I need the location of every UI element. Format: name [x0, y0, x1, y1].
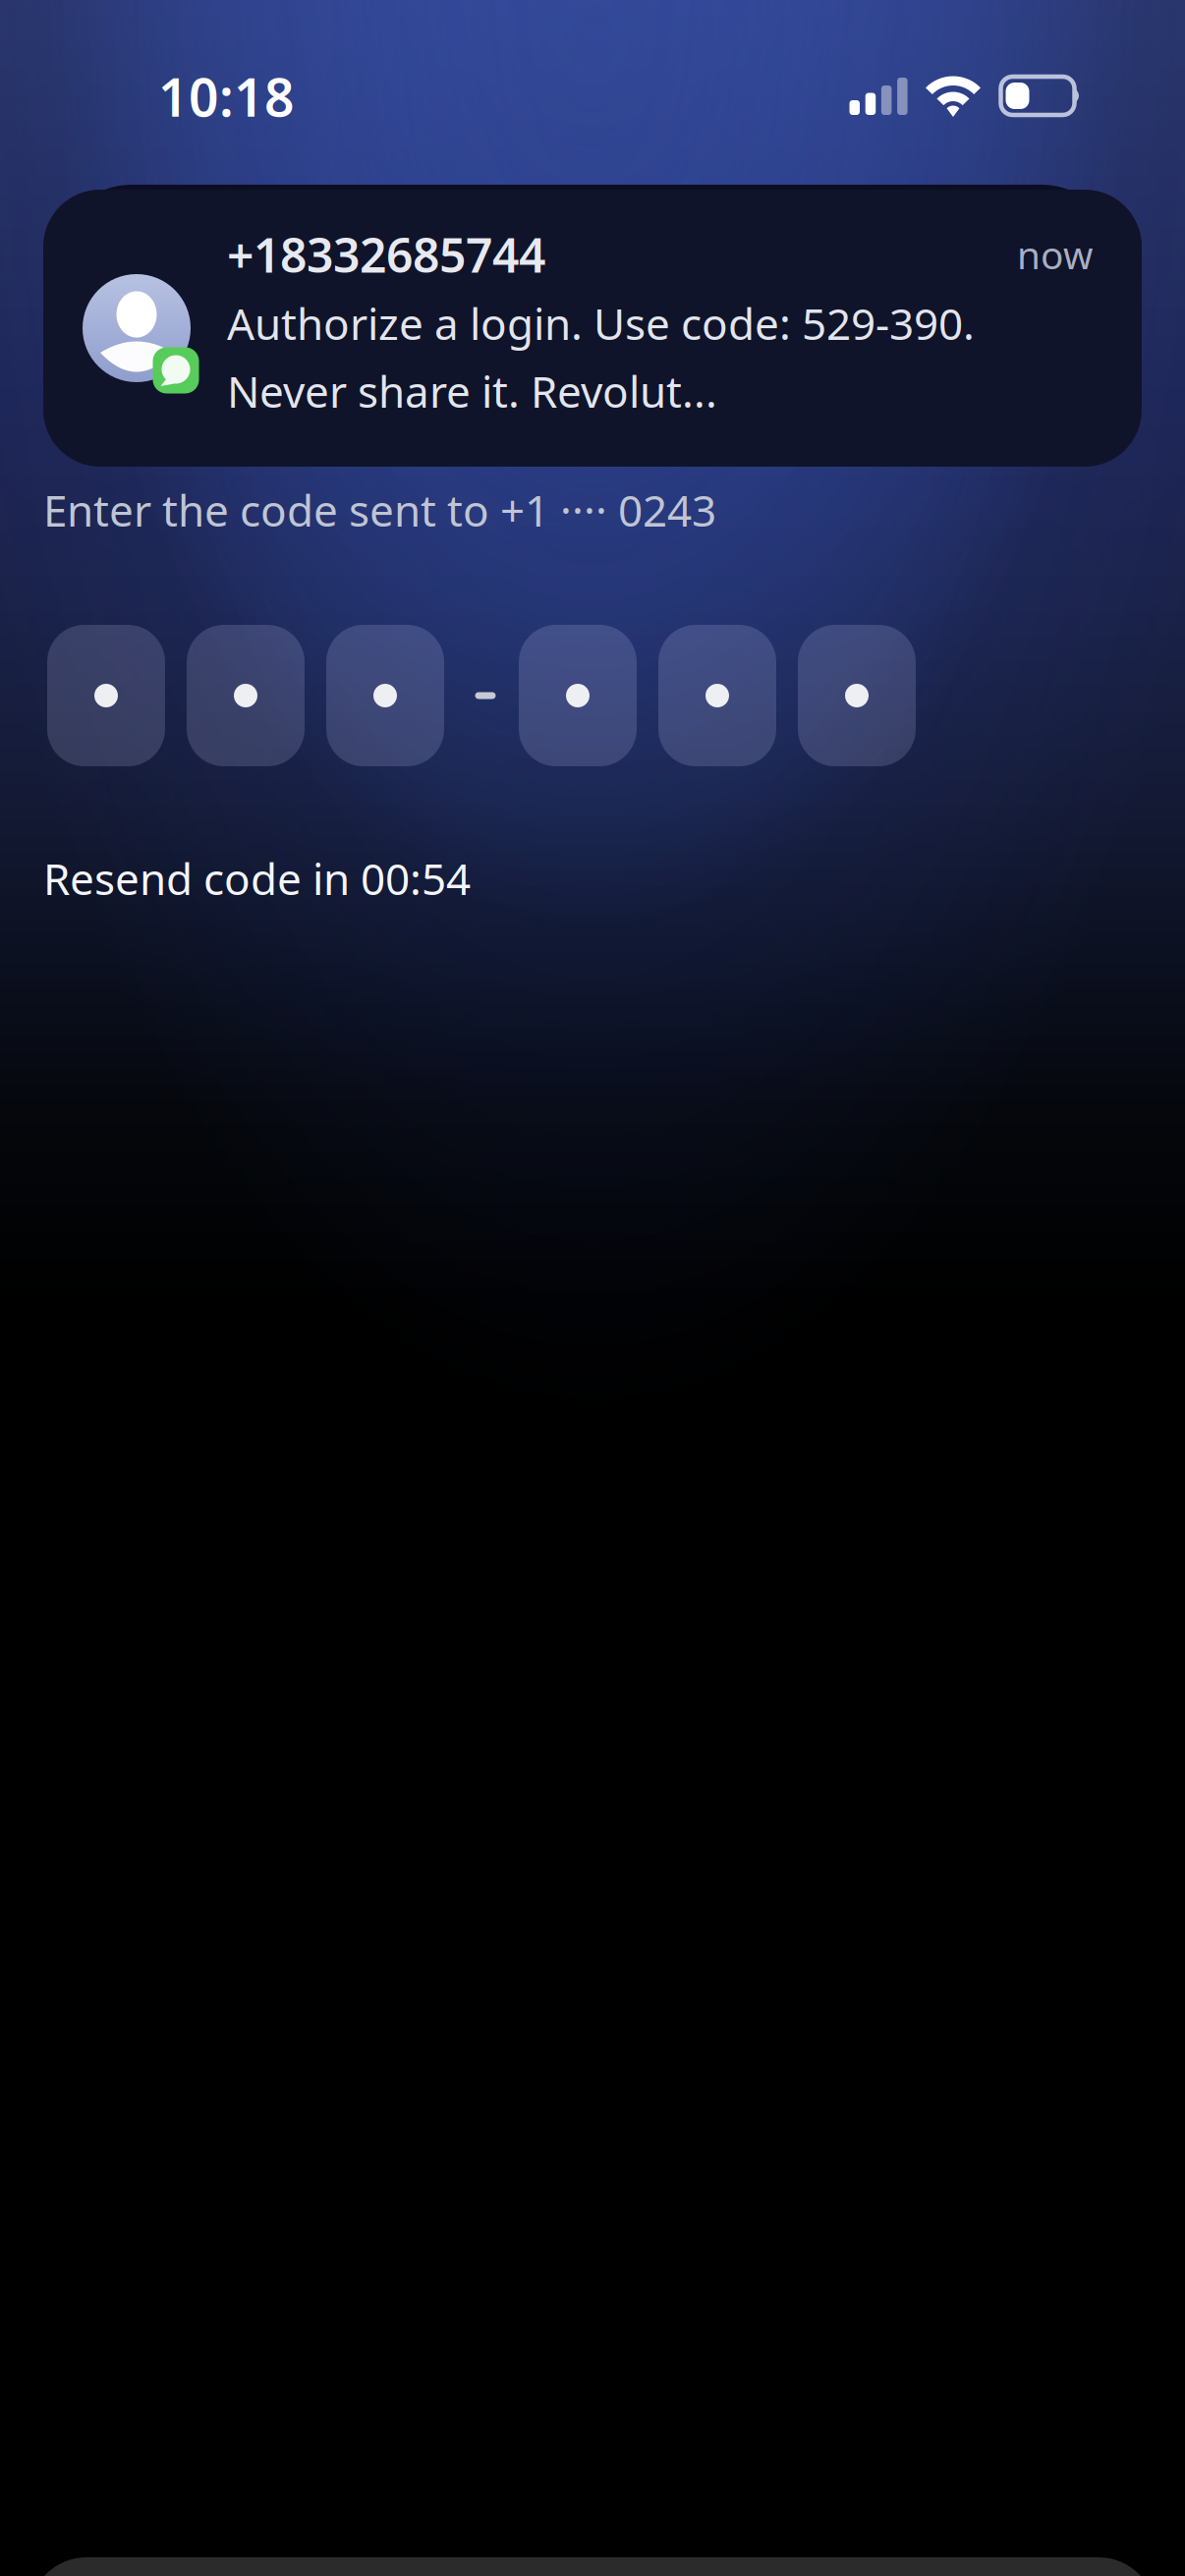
staticText: 10:18 [158, 62, 295, 131]
button[interactable]: Notification from +18332685744: Authoriz… [43, 190, 1142, 467]
staticText: now [1017, 229, 1093, 280]
button[interactable]: Code digit [519, 625, 637, 766]
button[interactable]: Code digit [658, 625, 776, 766]
staticText: Enter the code sent to +1 ···· 0243 [43, 481, 716, 539]
button[interactable]: Code digit [47, 625, 165, 766]
staticText: +18332685744 [227, 223, 545, 286]
staticText: Authorize a login. Use code: 529-390. [227, 295, 975, 352]
button[interactable]: Code digit [187, 625, 305, 766]
staticText: Never share it. Revolut... [227, 362, 717, 420]
staticText: Resend code in 00:54 [43, 850, 471, 907]
button[interactable]: Code digit [326, 625, 444, 766]
button[interactable]: Code digit [798, 625, 916, 766]
